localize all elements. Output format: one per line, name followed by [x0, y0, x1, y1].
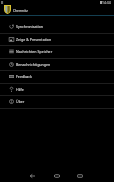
staticText: Hilfe: [16, 87, 24, 92]
button[interactable]: Home: [45, 168, 69, 182]
staticText: Feedback: [16, 74, 32, 79]
staticText: Benachrichtigungen: [16, 62, 51, 67]
button[interactable]: Hilfe: [0, 83, 114, 95]
staticText: Zeige & Presentation: [16, 37, 52, 42]
staticText: 14:34: [102, 0, 111, 5]
staticText: Über: [16, 99, 25, 104]
button[interactable]: Feedback: [0, 70, 114, 83]
button[interactable]: Chemnitz: [0, 5, 30, 15]
button[interactable]: Back: [20, 168, 44, 182]
button[interactable]: Recent apps: [68, 168, 92, 182]
button[interactable]: Nachrichten Speicher: [0, 45, 114, 58]
staticText: Synchronisation: [16, 24, 44, 29]
button[interactable]: Benachrichtigungen: [0, 58, 114, 70]
staticText: Nachrichten Speicher: [16, 49, 53, 54]
staticText: Chemnitz: [13, 8, 28, 12]
button[interactable]: Zeige & Presentation: [0, 33, 114, 45]
button[interactable]: Über: [0, 95, 114, 108]
button[interactable]: Synchronisation: [0, 20, 114, 33]
